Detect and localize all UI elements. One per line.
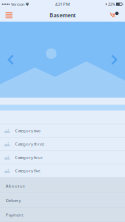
button[interactable]: Delivery: [0, 193, 125, 208]
staticText: Payment: [6, 212, 23, 217]
button[interactable]: Next image: [104, 50, 124, 70]
staticText: Delivery: [6, 198, 21, 203]
button[interactable]: Category three: [0, 137, 125, 150]
staticText: Category five: [15, 168, 40, 173]
staticText: Category three: [15, 141, 44, 147]
staticText: Verizon: [11, 2, 24, 7]
button[interactable]: Category five: [0, 164, 125, 177]
staticText: Category two: [15, 128, 41, 133]
staticText: 4:21 PM: [55, 1, 70, 7]
button[interactable]: Cart: [105, 9, 125, 22]
button[interactable]: Payment: [0, 208, 125, 222]
button[interactable]: About us: [0, 179, 125, 193]
button[interactable]: Category four: [0, 150, 125, 164]
staticText: About us: [6, 183, 25, 188]
staticText: Basement: [49, 12, 75, 19]
button[interactable]: Previous image: [0, 50, 20, 70]
staticText: Category four: [15, 155, 43, 160]
staticText: 22%: [108, 2, 115, 7]
button[interactable]: Menu: [0, 9, 18, 22]
button[interactable]: Category two: [0, 124, 125, 137]
